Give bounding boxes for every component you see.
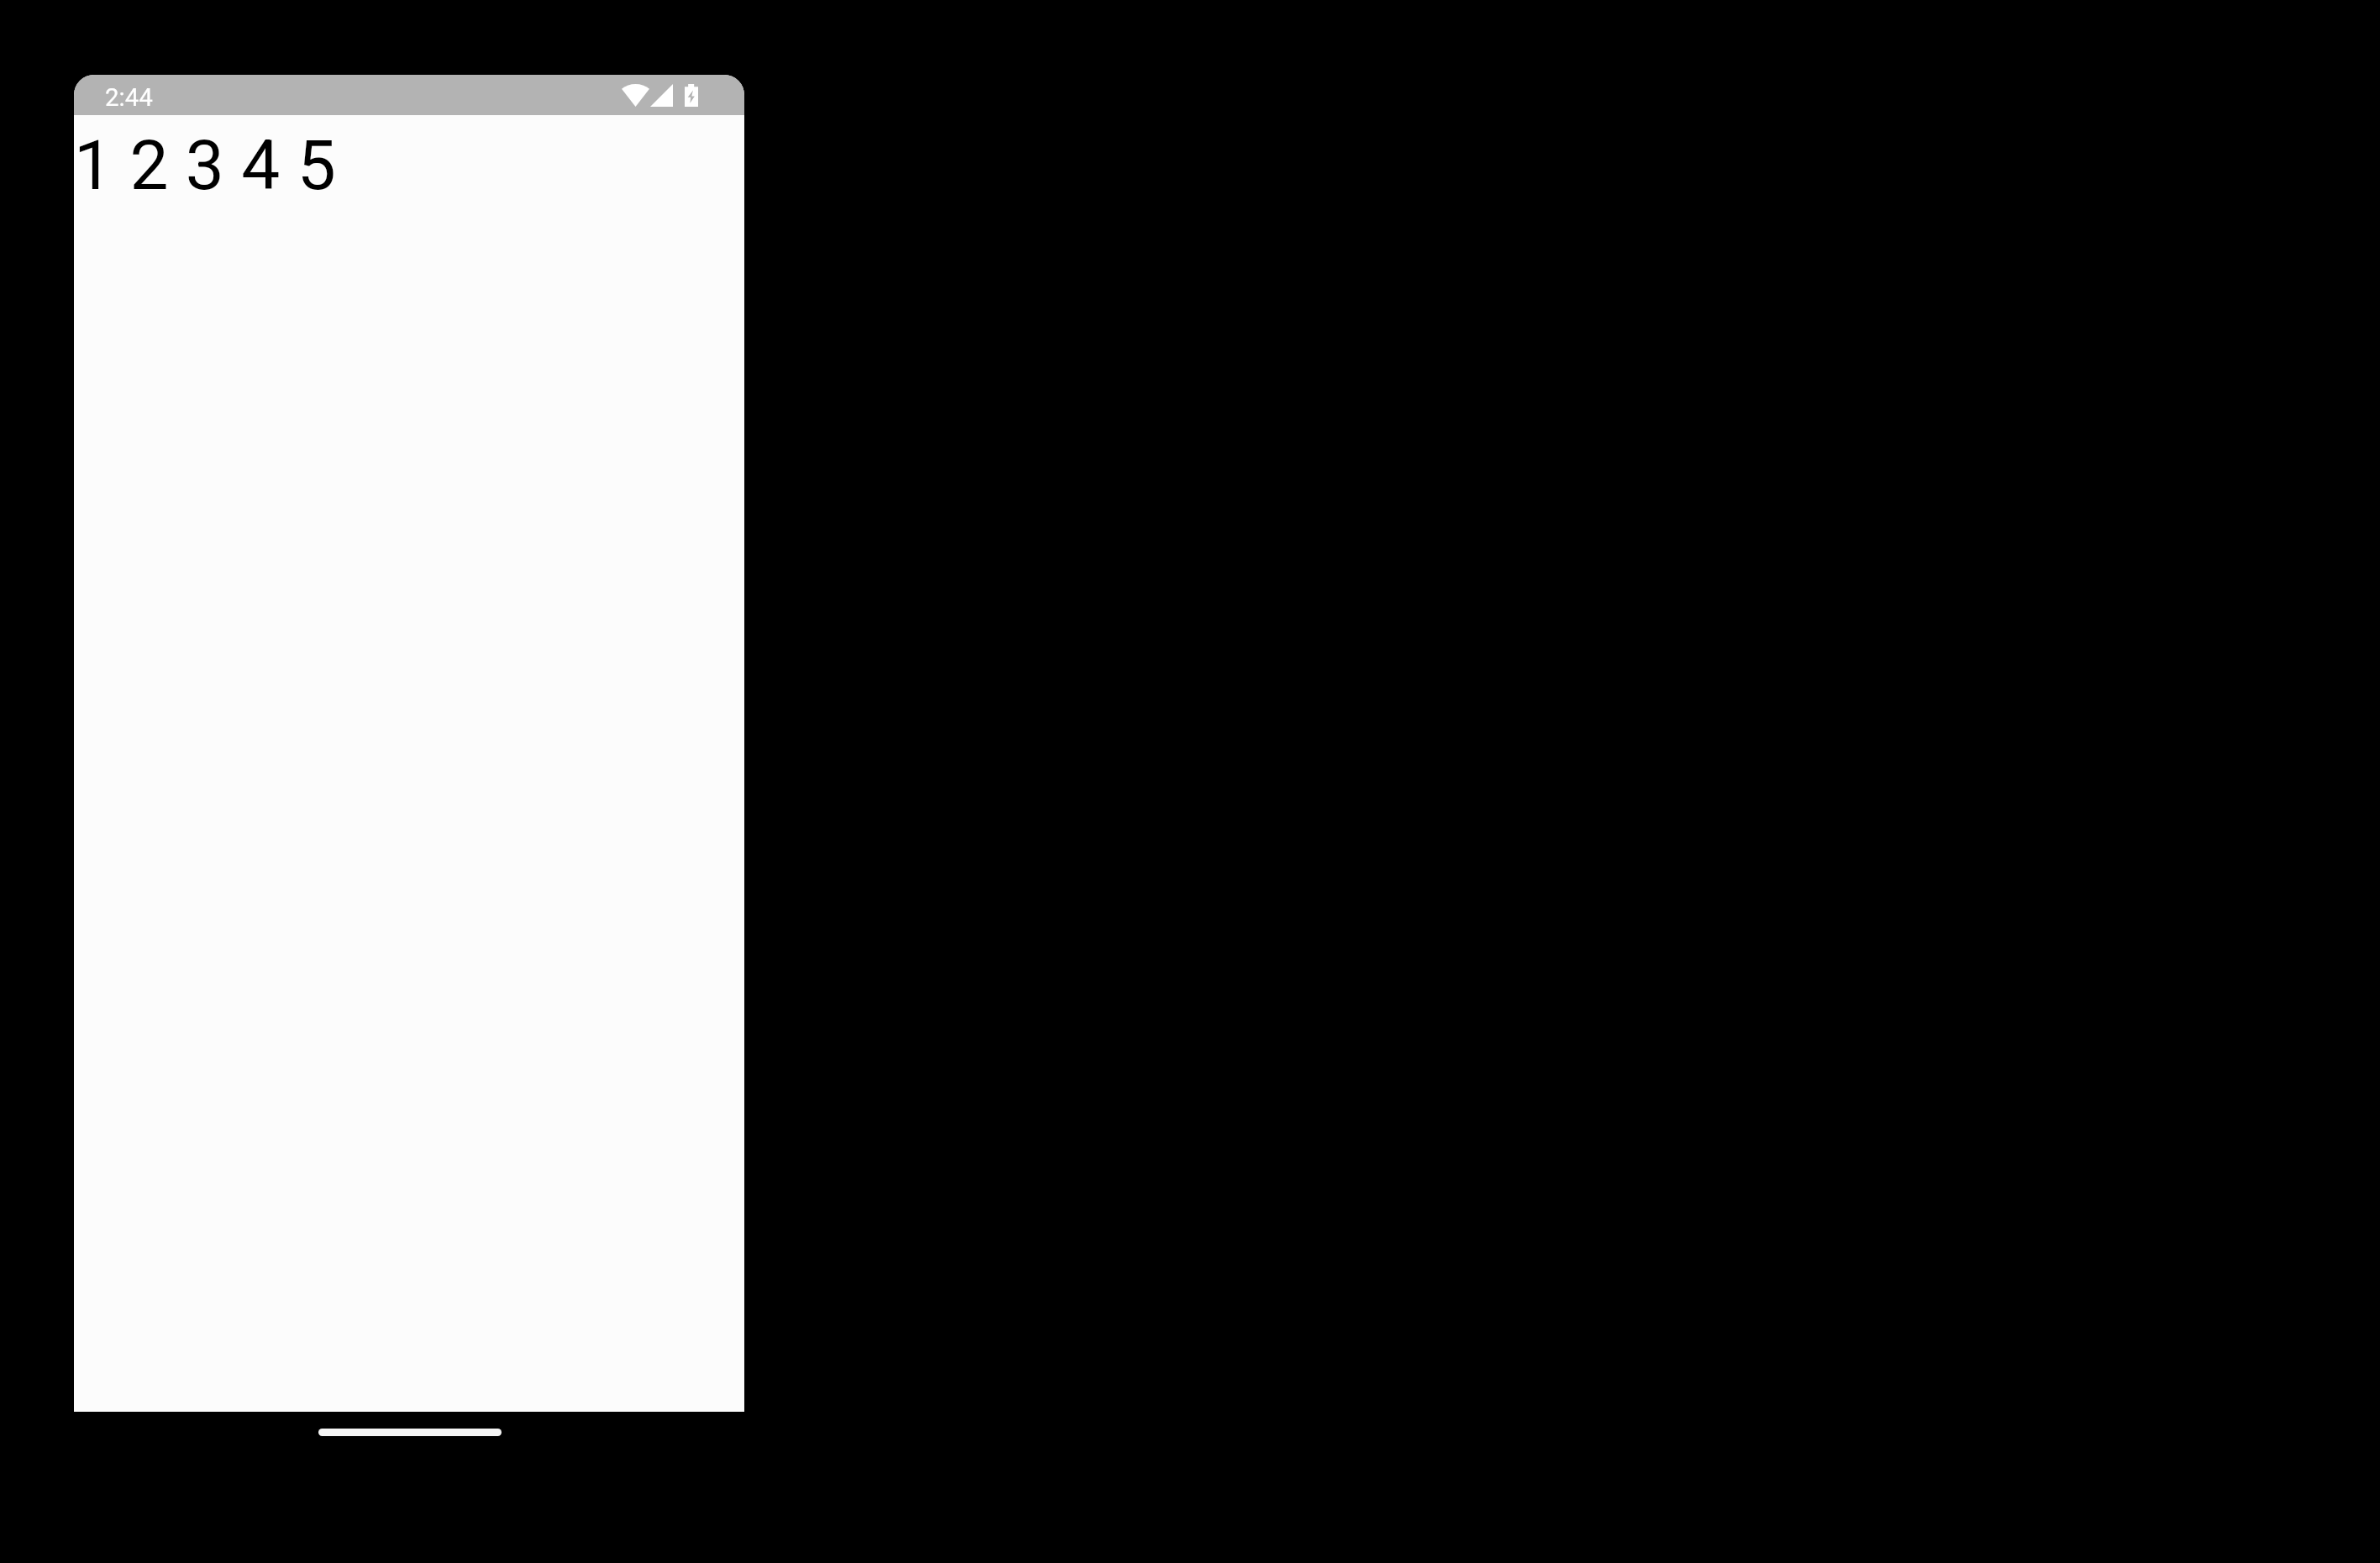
other: Wi-Fi signal (622, 84, 649, 107)
button[interactable]: Home (318, 1429, 502, 1436)
other: Mobile signal (650, 84, 673, 107)
staticText: 2:44 (105, 83, 153, 113)
other: Battery charging (685, 84, 698, 107)
staticText: 1 2 3 4 5 (74, 125, 336, 206)
